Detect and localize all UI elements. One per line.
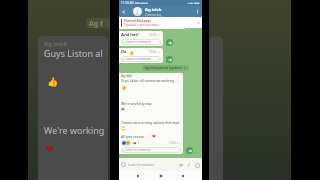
staticText: 👍: [47, 77, 59, 88]
staticText: ›: [159, 57, 160, 61]
staticText: Leave a comment: [126, 57, 151, 61]
button[interactable]: Leave a comment: [121, 56, 161, 62]
button[interactable]: Back: [134, 172, 142, 180]
button[interactable]: Reply: [186, 147, 193, 154]
staticText: Connecting: [145, 13, 162, 17]
staticText: ❤: [152, 134, 156, 139]
staticText: 11:38 AM ▪▪ ▬▬▬: [121, 1, 149, 5]
staticText: We're working: [44, 124, 105, 136]
staticText: 👍: [121, 85, 127, 90]
staticText: ❤: [133, 141, 137, 146]
staticText: Ag trick: [145, 7, 162, 13]
staticText: Guys Liston al: [44, 47, 103, 59]
staticText: 😊: [121, 126, 126, 131]
button[interactable]: Reply: [166, 56, 173, 63]
staticText: All give reason.....: [121, 134, 149, 139]
staticText: Ag t: [89, 19, 104, 28]
staticText: ❤: [45, 143, 55, 156]
button[interactable]: Recents: [179, 172, 187, 180]
button[interactable]: Sticker: [178, 162, 184, 168]
button[interactable]: Camera: [194, 162, 200, 168]
staticText: Leave a comment: [126, 148, 151, 152]
button[interactable]: Back: [119, 7, 129, 17]
staticText: ▴ ▬ ▬▬: [188, 1, 200, 5]
staticText: Da: [121, 49, 127, 55]
staticText: Tapback a spit previous: [124, 23, 159, 27]
staticText: And hat!: [121, 32, 139, 38]
button[interactable]: More options: [193, 7, 202, 16]
staticText: We're working now: [121, 101, 152, 106]
staticText: Ag trick: [121, 74, 132, 78]
staticText: ✕: [197, 21, 200, 25]
staticText: ❤: [121, 107, 125, 112]
staticText: Ag trick joined (update) ✦: [145, 66, 186, 70]
staticText: Learn knowiess: [128, 162, 155, 167]
button[interactable]: Leave a comment: [121, 147, 181, 153]
staticText: 1: [138, 141, 140, 145]
staticText: Ag trick: [44, 40, 68, 48]
staticText: Leave a comment: [126, 40, 151, 44]
staticText: 👍: [129, 50, 134, 55]
button[interactable]: Home: [157, 172, 165, 180]
button[interactable]: Reply: [166, 39, 173, 46]
button[interactable]: Attach: [186, 162, 192, 168]
staticText: 12:33 ✓✓: [149, 50, 161, 54]
staticText: ›: [179, 148, 180, 152]
staticText: 12:33 ✓✓: [149, 33, 161, 37]
staticText: Pinned Message: [124, 18, 152, 23]
staticText: Tomorrow morning upload that mod: [121, 120, 180, 125]
staticText: 12:33 ✓✓: [169, 141, 181, 145]
staticText: Guys Labor all tomorrow working ....: [121, 78, 179, 83]
staticText: ›: [159, 40, 160, 44]
button[interactable]: Reactions: [121, 140, 131, 146]
button[interactable]: Leave a comment: [121, 39, 161, 45]
